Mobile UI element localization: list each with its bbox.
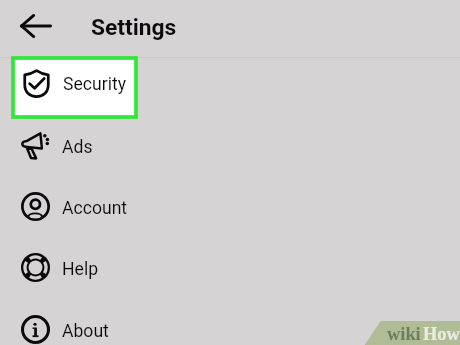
staticText: Help (62, 259, 99, 280)
button[interactable]: Account (0, 176, 460, 237)
staticText: Settings (91, 14, 177, 41)
staticText: Security (63, 74, 127, 95)
staticText: How (423, 324, 460, 344)
button[interactable]: Security (13, 58, 136, 117)
button[interactable]: Help (0, 237, 460, 298)
staticText: Ads (62, 137, 93, 158)
button[interactable]: About (0, 299, 460, 345)
staticText: wiki (387, 324, 421, 344)
button[interactable]: Back (20, 14, 52, 38)
staticText: Security (62, 76, 126, 97)
button[interactable]: Ads (0, 115, 460, 176)
button[interactable]: Security (0, 54, 460, 115)
staticText: About (62, 321, 109, 342)
staticText: Account (62, 198, 128, 219)
